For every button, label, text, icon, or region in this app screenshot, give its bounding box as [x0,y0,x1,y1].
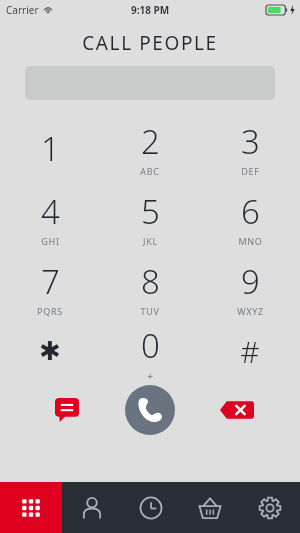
button[interactable]: Keypad [0,482,62,533]
staticText: Carrier [6,3,39,17]
button[interactable]: 5 [100,183,200,253]
staticText: 3 [241,119,260,164]
staticText: 2 [141,119,160,164]
button[interactable]: 1 [0,113,100,183]
staticText: 7 [41,259,60,304]
staticText: 4 [41,189,60,234]
staticText: CALL PEOPLE [82,30,218,56]
button[interactable]: 4 [0,183,100,253]
staticText: DEF [241,165,260,177]
button[interactable]: Recents [121,482,180,533]
staticText: GHI [41,235,60,247]
staticText: 9 [241,259,260,304]
button[interactable]: 0 [100,323,200,379]
staticText: 0 [141,323,160,368]
button[interactable]: Message [50,393,84,427]
button[interactable]: 9 [200,253,300,323]
staticText: # [240,331,260,372]
button[interactable]: 3 [200,113,300,183]
button[interactable]: 6 [200,183,300,253]
staticText: 9:18 PM [131,3,170,17]
staticText: JKL [143,235,158,247]
staticText: + [147,369,154,379]
button[interactable]: Store [180,482,240,533]
staticText: TUV [140,305,160,317]
button[interactable]: Call [125,385,175,435]
staticText: WXYZ [237,305,264,317]
button[interactable]: ✱ [0,323,100,379]
button[interactable]: 7 [0,253,100,323]
button[interactable]: # [200,323,300,379]
staticText: 5 [141,189,160,234]
staticText: MNO [238,235,263,247]
button[interactable]: Backspace [218,397,256,423]
staticText: ABC [140,165,160,177]
button[interactable]: 2 [100,113,200,183]
staticText: 1 [41,126,60,171]
staticText: PQRS [37,305,63,317]
staticText: 6 [241,189,260,234]
button[interactable]: Settings [240,482,300,533]
button[interactable]: 8 [100,253,200,323]
button[interactable]: Contacts [62,482,121,533]
staticText: 8 [141,259,160,304]
staticText: ✱ [39,336,61,366]
